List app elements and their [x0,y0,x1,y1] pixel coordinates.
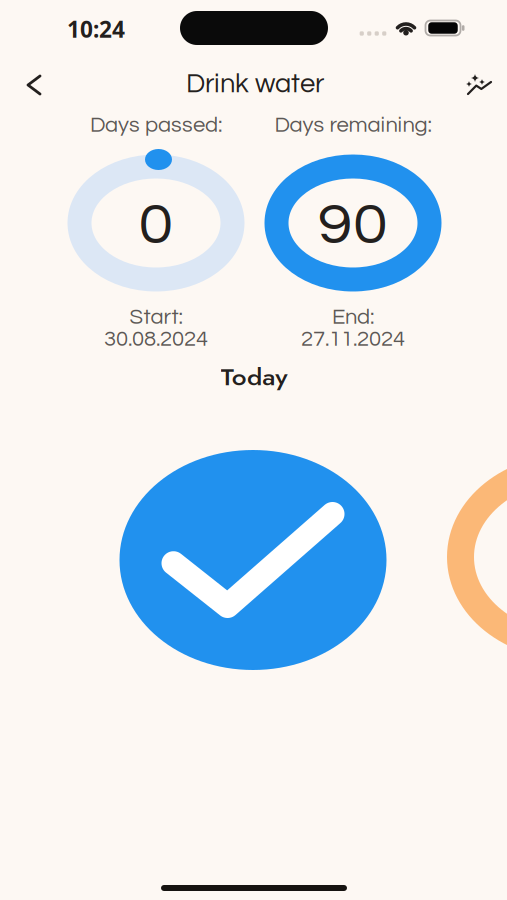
staticText: End: [332,306,374,328]
staticText: Days passed: [90,114,222,136]
staticText: Start: [129,306,182,328]
staticText: 30.08.2024 [104,328,208,350]
staticText: 27.11.2024 [301,328,405,350]
staticText: Drink water [186,70,324,98]
staticText: Days remaining: [274,114,431,136]
staticText: 0 [140,196,172,255]
button[interactable]: Statistics [450,60,507,108]
staticText: 90 [321,196,385,255]
button[interactable]: Drink water — completed today [119,450,386,670]
staticText: 10:24 [67,14,125,44]
staticText: Today [223,360,284,394]
button[interactable]: Back [12,61,56,109]
